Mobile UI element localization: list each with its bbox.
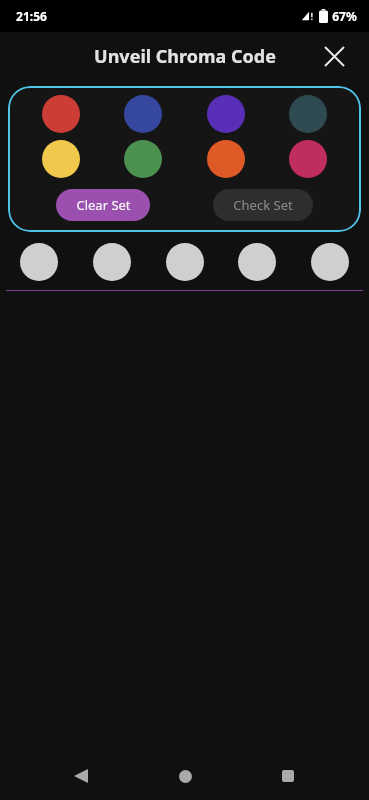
button[interactable]: Guess slot [93,243,131,281]
button[interactable]: Color swatch [124,95,162,133]
button[interactable]: Home [163,754,207,798]
button[interactable]: Clear Set [56,189,150,221]
button[interactable]: Color swatch [289,140,327,178]
staticText: 67% [332,8,357,24]
staticText: Clear Set [76,196,131,214]
button[interactable]: Guess slot [166,243,204,281]
button[interactable]: Guess slot [238,243,276,281]
button[interactable]: Back [59,754,103,798]
button[interactable]: Recent apps [266,754,310,798]
button[interactable]: Check Set [213,189,313,221]
staticText: 21:56 [16,8,47,24]
button[interactable]: Color swatch [124,140,162,178]
staticText: Check Set [233,196,293,214]
button[interactable]: Guess slot [20,243,58,281]
button[interactable]: Guess slot [311,243,349,281]
button[interactable]: Color swatch [207,140,245,178]
button[interactable]: Close [317,39,351,73]
staticText: Unveil Chroma Code [94,44,276,69]
button[interactable]: Color swatch [207,95,245,133]
button[interactable]: Color swatch [42,140,80,178]
button[interactable]: Color swatch [289,95,327,133]
button[interactable]: Color swatch [42,95,80,133]
